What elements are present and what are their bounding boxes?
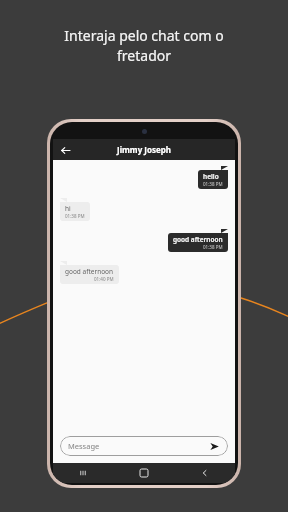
- button[interactable]: good afternoon: [60, 261, 119, 284]
- staticText: Message: [68, 441, 208, 451]
- staticText: good afternoon: [65, 267, 114, 276]
- button[interactable]: Message: [60, 436, 228, 456]
- button[interactable]: good afternoon: [168, 229, 228, 252]
- staticText: hello: [203, 172, 219, 181]
- button[interactable]: Home: [113, 463, 174, 483]
- button[interactable]: Send: [208, 440, 220, 452]
- staticText: good afternoon: [173, 235, 223, 244]
- staticText: hi: [65, 204, 71, 213]
- staticText: Interaja pelo chat com o fretador: [20, 26, 268, 65]
- button[interactable]: Back: [174, 463, 235, 483]
- staticText: 01:38 PM: [203, 244, 223, 250]
- button[interactable]: Recent apps: [53, 463, 113, 483]
- staticText: 01:38 PM: [203, 181, 223, 187]
- button[interactable]: hello: [198, 166, 228, 189]
- button[interactable]: Back: [57, 142, 73, 158]
- staticText: 01:38 PM: [65, 213, 85, 219]
- button[interactable]: hi: [60, 198, 90, 221]
- staticText: 01:40 PM: [94, 276, 114, 282]
- staticText: Jimmy Joseph: [117, 144, 171, 155]
